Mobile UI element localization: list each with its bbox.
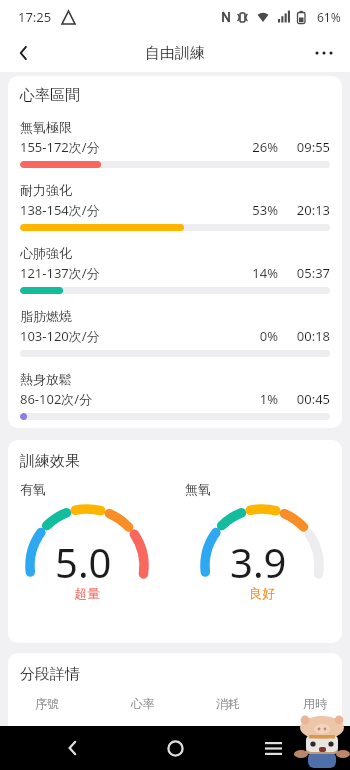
- staticText: 心率區間: [20, 86, 80, 105]
- staticText: 00:45: [290, 390, 330, 408]
- staticText: 09:55: [290, 138, 330, 156]
- staticText: 熱身放鬆: [20, 371, 72, 387]
- staticText: 138-154次/分: [20, 201, 100, 219]
- staticText: 有氧: [20, 481, 46, 497]
- staticText: 用時: [303, 696, 327, 711]
- button[interactable]: [308, 37, 340, 69]
- staticText: 分段詳情: [20, 665, 80, 684]
- button[interactable]: [155, 726, 195, 770]
- staticText: 3.9: [230, 535, 287, 589]
- staticText: 超量: [20, 585, 154, 601]
- staticText: 1%: [234, 390, 278, 408]
- staticText: 脂肪燃燒: [20, 308, 72, 324]
- button[interactable]: 無氧極限: [20, 119, 330, 182]
- staticText: 05:37: [290, 264, 330, 282]
- button[interactable]: 脂肪燃燒: [20, 308, 330, 371]
- staticText: 103-120次/分: [20, 327, 100, 345]
- staticText: 心率: [131, 696, 155, 711]
- button[interactable]: [253, 726, 293, 770]
- staticText: 訓練效果: [20, 452, 80, 471]
- staticText: 5.0: [55, 535, 112, 589]
- staticText: 121-137次/分: [20, 264, 100, 282]
- staticText: 消耗: [216, 696, 240, 711]
- button[interactable]: [53, 726, 93, 770]
- staticText: 無氧: [185, 481, 211, 497]
- staticText: 良好: [195, 585, 329, 601]
- button[interactable]: [8, 37, 40, 69]
- staticText: 61%: [317, 9, 341, 25]
- button[interactable]: 有氧: [20, 481, 154, 601]
- button[interactable]: 耐力強化: [20, 182, 330, 245]
- button[interactable]: 熱身放鬆: [20, 371, 330, 420]
- button[interactable]: 無氧: [185, 481, 329, 601]
- staticText: 155-172次/分: [20, 138, 100, 156]
- staticText: 26%: [234, 138, 278, 156]
- staticText: 自由訓練: [145, 44, 205, 63]
- button[interactable]: 心肺強化: [20, 245, 330, 308]
- staticText: 53%: [234, 201, 278, 219]
- staticText: 耐力強化: [20, 182, 72, 198]
- staticText: 無氧極限: [20, 119, 72, 135]
- staticText: 00:18: [290, 327, 330, 345]
- staticText: 86-102次/分: [20, 390, 93, 408]
- staticText: 17:25: [18, 8, 52, 26]
- staticText: 0%: [234, 327, 278, 345]
- staticText: 心肺強化: [20, 245, 72, 261]
- staticText: 20:13: [290, 201, 330, 219]
- staticText: 14%: [234, 264, 278, 282]
- staticText: 序號: [35, 696, 59, 711]
